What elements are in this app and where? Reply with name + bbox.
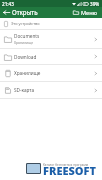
staticText: Хранилище [14, 70, 41, 76]
staticText: FREESOFT [43, 163, 96, 178]
button[interactable]: SD-карта [0, 82, 102, 98]
staticText: Каталог бесплатных программ [43, 163, 88, 167]
staticText: 21:43 [2, 1, 14, 7]
button[interactable]: Back [0, 7, 12, 18]
button[interactable]: Documents [0, 30, 102, 48]
staticText: Download [14, 54, 37, 60]
staticText: Меню [81, 9, 98, 17]
staticText: Хранилище [14, 40, 34, 45]
staticText: SD-карта [14, 87, 35, 93]
button[interactable]: Download [0, 49, 102, 64]
staticText: Это устройство [11, 21, 40, 26]
staticText: Открыть [12, 8, 38, 16]
button[interactable]: Это устройство [0, 18, 102, 29]
button[interactable]: Хранилище [0, 65, 102, 81]
staticText: Documents [14, 33, 40, 39]
button[interactable]: Меню [70, 7, 102, 18]
staticText: 39% [90, 1, 100, 7]
